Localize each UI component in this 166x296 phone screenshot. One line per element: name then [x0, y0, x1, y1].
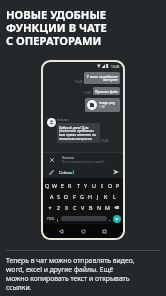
- staticText: Z: [57, 204, 61, 211]
- staticText: G: [80, 193, 84, 200]
- button[interactable]: Close reply: [50, 158, 54, 162]
- button[interactable]: Добрый день! Для уточнения проблемы вам …: [57, 123, 100, 143]
- staticText: N: [97, 204, 102, 211]
- staticText: Наталья: [57, 118, 69, 122]
- button[interactable]: Attach file: [49, 170, 54, 175]
- staticText: P: [116, 182, 120, 189]
- staticText: У меня не работает интернет: [86, 74, 118, 82]
- button[interactable]: T: [74, 180, 82, 191]
- button[interactable]: W: [51, 180, 58, 191]
- button[interactable]: P: [114, 180, 122, 191]
- button[interactable]: N: [95, 202, 103, 213]
- button[interactable]: Q: [44, 180, 51, 191]
- button[interactable]: Back: [59, 229, 64, 234]
- button[interactable]: X: [63, 202, 71, 213]
- staticText: 13:41: [84, 91, 92, 95]
- staticText: A: [50, 193, 54, 200]
- button[interactable]: C: [71, 202, 79, 213]
- button[interactable]: F: [70, 191, 78, 202]
- staticText: U: [92, 182, 96, 189]
- button[interactable]: A: [48, 191, 55, 202]
- staticText: ,: [57, 215, 59, 222]
- staticText: S: [57, 193, 60, 200]
- button[interactable]: .: [107, 213, 113, 224]
- staticText: 13:40: [75, 80, 83, 84]
- staticText: M: [105, 204, 110, 211]
- staticText: НОВЫЕ УДОБНЫЕ ФУНКЦИИ В ЧАТЕ С ОПЕРАТОРА…: [6, 7, 107, 49]
- staticText: V: [81, 204, 85, 211]
- button[interactable]: V: [79, 202, 87, 213]
- button[interactable]: J: [94, 191, 102, 202]
- button[interactable]: L: [110, 191, 118, 202]
- staticText: E: [61, 182, 64, 189]
- button[interactable]: I: [98, 180, 106, 191]
- button[interactable]: H: [86, 191, 94, 202]
- staticText: B: [89, 204, 93, 211]
- staticText: Прислал файл: [95, 89, 118, 93]
- button[interactable]: Home: [81, 229, 86, 234]
- button[interactable]: Space: [61, 216, 107, 221]
- staticText: 13:45: [111, 64, 120, 68]
- button[interactable]: Recent apps: [102, 229, 107, 234]
- staticText: Всё по недоступным ссылке?...: [62, 160, 107, 164]
- button[interactable]: B: [87, 202, 95, 213]
- staticText: I: [101, 182, 103, 189]
- button[interactable]: Z: [55, 202, 63, 213]
- staticText: 1 Мб: [99, 105, 106, 109]
- button[interactable]: Backspace: [111, 202, 122, 213]
- button[interactable]: ?123: [45, 213, 55, 224]
- staticText: Q: [45, 182, 50, 189]
- button[interactable]: U: [90, 180, 98, 191]
- button[interactable]: Прислал файл: [93, 87, 120, 95]
- staticText: C: [73, 204, 77, 211]
- button[interactable]: Enter: [113, 215, 121, 223]
- staticText: Наталья: [62, 156, 75, 160]
- staticText: H: [88, 193, 92, 200]
- staticText: Сейчас: [59, 170, 73, 175]
- staticText: L: [113, 193, 116, 200]
- staticText: O: [108, 182, 113, 189]
- staticText: X: [65, 204, 69, 211]
- staticText: W: [52, 182, 58, 189]
- staticText: Теперь в чат можно отправлять видео, wor…: [6, 256, 137, 292]
- staticText: D: [64, 193, 68, 200]
- staticText: Добрый день! Для уточнения проблемы вам …: [59, 125, 98, 141]
- staticText: T: [77, 182, 80, 189]
- staticText: F: [73, 193, 76, 200]
- staticText: J: [97, 193, 99, 200]
- button[interactable]: G: [78, 191, 86, 202]
- staticText: image.png: [99, 101, 115, 105]
- button[interactable]: S: [55, 191, 62, 202]
- staticText: Y: [84, 182, 88, 189]
- button[interactable]: K: [102, 191, 110, 202]
- button[interactable]: Shift: [44, 202, 55, 213]
- button[interactable]: R: [66, 180, 74, 191]
- staticText: .: [109, 215, 111, 222]
- button[interactable]: D: [62, 191, 70, 202]
- button[interactable]: Y: [82, 180, 90, 191]
- button[interactable]: O: [106, 180, 114, 191]
- button[interactable]: image.png: [85, 98, 120, 112]
- button[interactable]: ,: [55, 213, 61, 224]
- staticText: ?123: [47, 217, 54, 221]
- button[interactable]: E: [58, 180, 66, 191]
- staticText: 13:45: [101, 139, 109, 143]
- staticText: K: [104, 193, 108, 200]
- button[interactable]: У меня не работает интернет: [84, 72, 120, 84]
- button[interactable]: Send message: [113, 169, 119, 175]
- staticText: R: [68, 182, 72, 189]
- button[interactable]: M: [103, 202, 111, 213]
